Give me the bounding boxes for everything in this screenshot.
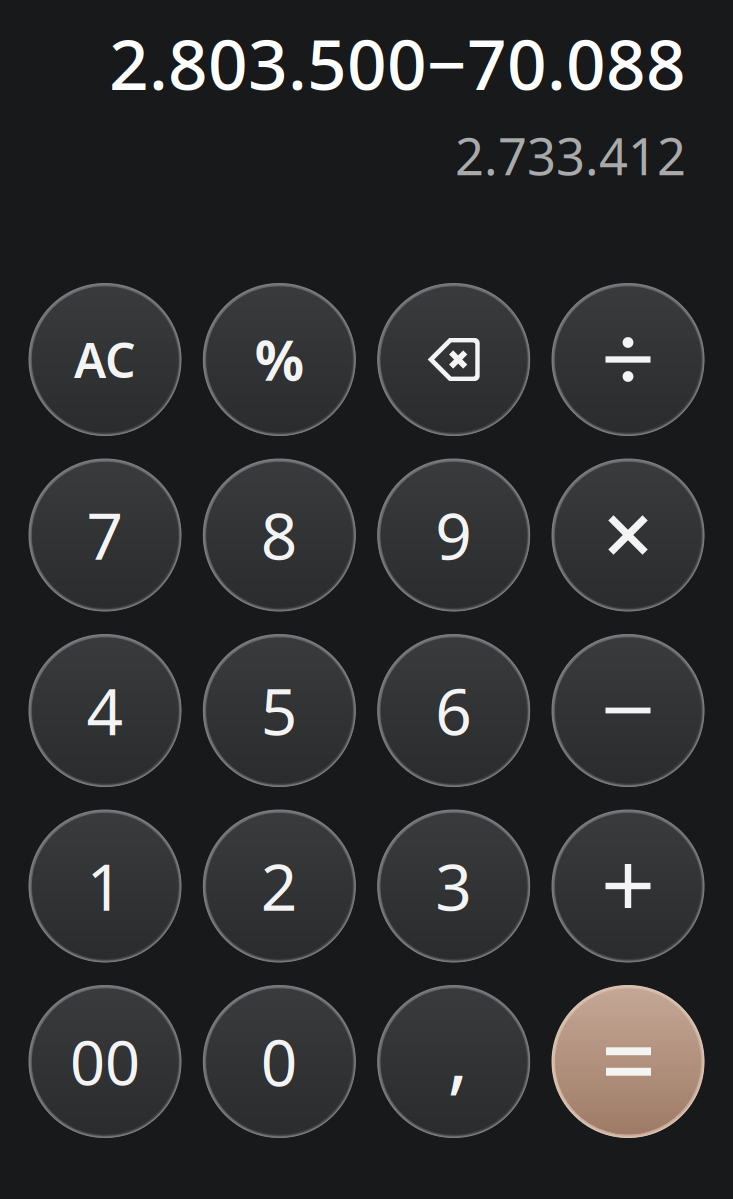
button[interactable]: AC — [28, 283, 181, 436]
staticText: 2.803.500−70.088 — [109, 17, 686, 109]
button[interactable]: Equals — [551, 985, 704, 1138]
staticText: % — [255, 323, 304, 396]
button[interactable]: 1 — [28, 809, 181, 962]
staticText: 2 — [261, 843, 298, 928]
button[interactable]: 4 — [28, 634, 181, 787]
button[interactable]: 0 — [203, 985, 356, 1138]
button[interactable]: 9 — [377, 458, 530, 611]
staticText: 8 — [261, 492, 298, 577]
staticText: 7 — [86, 492, 123, 577]
staticText: 1 — [86, 843, 123, 928]
staticText: 3 — [435, 843, 472, 928]
button[interactable]: 6 — [377, 634, 530, 787]
staticText: AC — [74, 328, 136, 391]
staticText: 2.733.412 — [455, 122, 686, 189]
button[interactable]: 8 — [203, 458, 356, 611]
button[interactable]: 00 — [28, 985, 181, 1138]
button[interactable]: Minus — [551, 634, 704, 787]
button[interactable]: 5 — [203, 634, 356, 787]
button[interactable]: Delete — [377, 283, 530, 436]
staticText: 0 — [261, 1019, 298, 1104]
button[interactable]: Multiply — [551, 458, 704, 611]
button[interactable]: 7 — [28, 458, 181, 611]
staticText: , — [447, 1001, 468, 1108]
staticText: 4 — [86, 668, 123, 753]
button[interactable]: Divide — [551, 283, 704, 436]
staticText: 9 — [435, 492, 472, 577]
button[interactable]: 3 — [377, 809, 530, 962]
staticText: 5 — [261, 668, 298, 753]
button[interactable]: 2 — [203, 809, 356, 962]
button[interactable]: % — [203, 283, 356, 436]
staticText: 00 — [70, 1021, 140, 1102]
staticText: 6 — [435, 668, 472, 753]
button[interactable]: Plus — [551, 809, 704, 962]
button[interactable]: , — [377, 985, 530, 1138]
